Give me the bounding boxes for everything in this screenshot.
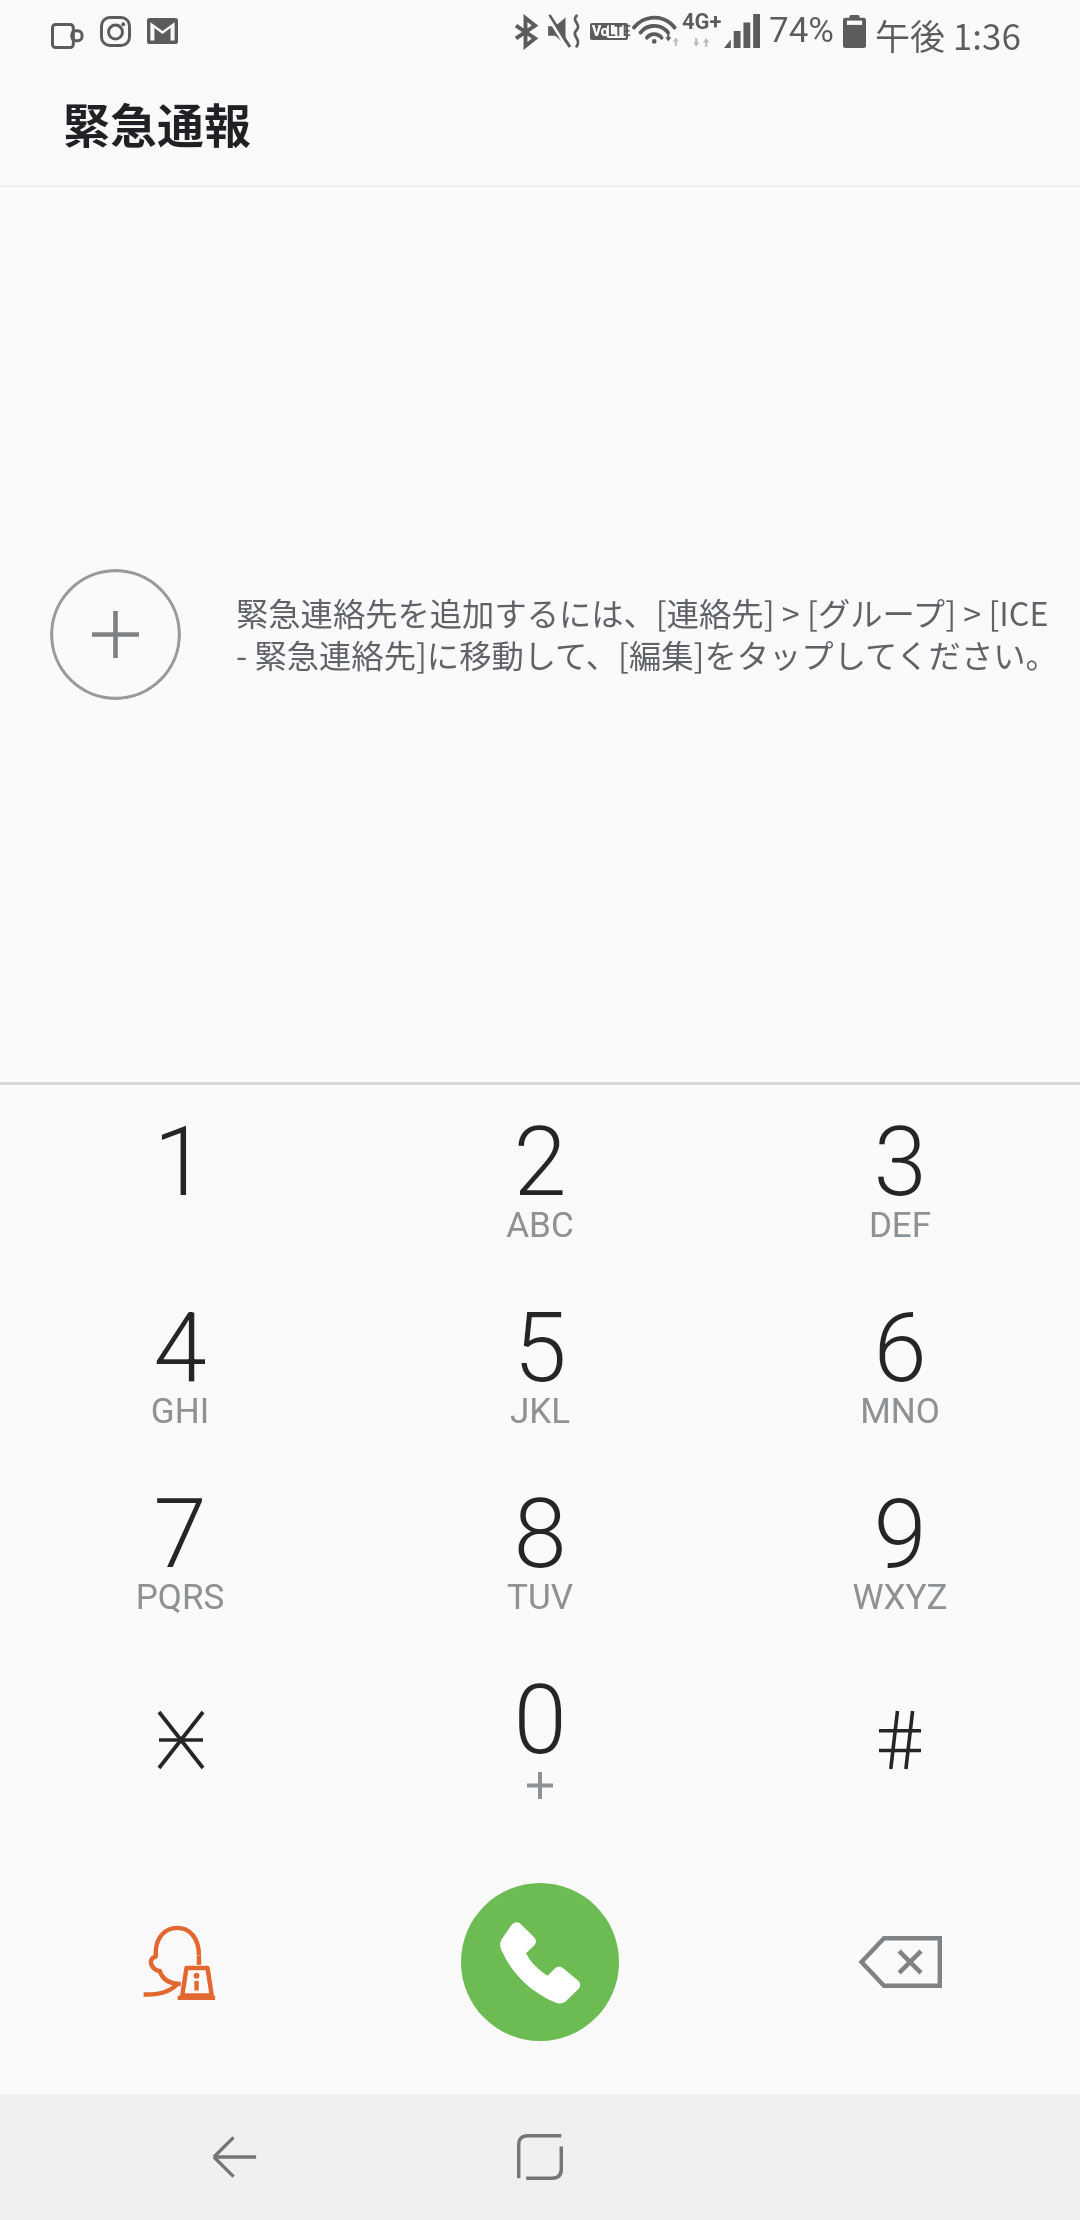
button[interactable]	[0, 1643, 360, 1829]
staticText: PQRS	[0, 1577, 360, 1618]
staticText: 2	[360, 1106, 720, 1219]
staticText: 0	[360, 1664, 720, 1777]
button[interactable]: 6	[720, 1271, 1080, 1457]
button[interactable]: 9	[720, 1457, 1080, 1643]
staticText: 4	[0, 1292, 360, 1405]
button[interactable]: 0	[360, 1643, 720, 1829]
button[interactable]: Back	[180, 2094, 290, 2220]
button[interactable]: 2	[360, 1085, 720, 1271]
staticText: TUV	[360, 1577, 720, 1618]
staticText: 9	[720, 1478, 1080, 1591]
staticText: DEF	[720, 1205, 1080, 1246]
staticText: 6	[720, 1292, 1080, 1405]
staticText: LTE	[608, 23, 631, 39]
staticText: 緊急通報	[63, 88, 251, 156]
staticText: 5	[360, 1292, 720, 1405]
button[interactable]: 7	[0, 1457, 360, 1643]
button[interactable]: 5	[360, 1271, 720, 1457]
staticText: 7	[0, 1478, 360, 1591]
button[interactable]: 1	[0, 1085, 360, 1271]
staticText: 74%	[769, 10, 834, 51]
staticText: 8	[360, 1478, 720, 1591]
staticText: 緊急連絡先を追加するには、[連絡先] > [グループ] > [ICE - 緊急連…	[236, 589, 1058, 677]
button[interactable]: 8	[360, 1457, 720, 1643]
staticText: 1	[0, 1106, 360, 1219]
staticText: 3	[720, 1106, 1080, 1219]
staticText: MNO	[720, 1391, 1080, 1432]
staticText: JKL	[360, 1391, 720, 1432]
button[interactable]: Call	[461, 1883, 619, 2041]
button[interactable]: 4	[0, 1271, 360, 1457]
button[interactable]: 3	[720, 1085, 1080, 1271]
staticText: 午後 1:36	[875, 9, 1021, 60]
button[interactable]: Backspace	[810, 1880, 990, 2060]
button[interactable]: Add emergency contact	[50, 569, 181, 700]
staticText: ABC	[360, 1205, 720, 1246]
staticText: Vo	[592, 23, 609, 39]
button[interactable]	[720, 1643, 1080, 1829]
button[interactable]: Recent apps	[485, 2094, 595, 2220]
staticText: 4G+	[682, 9, 722, 35]
button[interactable]: Emergency contact info	[90, 1880, 270, 2060]
staticText: GHI	[0, 1391, 360, 1432]
staticText: WXYZ	[720, 1577, 1080, 1618]
